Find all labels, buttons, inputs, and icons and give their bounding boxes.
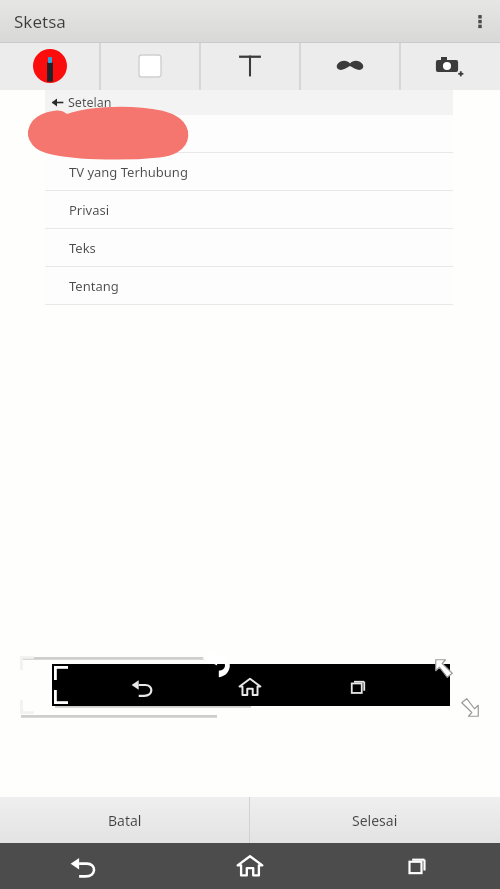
button[interactable]: Selesai — [250, 797, 500, 843]
staticText: Tentang — [69, 277, 119, 295]
button[interactable]: Tentang — [45, 267, 453, 305]
staticText: Sketsa — [14, 10, 66, 33]
button[interactable]: Batal — [0, 797, 249, 843]
staticText: Setelan — [68, 94, 112, 111]
staticText: TV yang Terhubung — [69, 163, 188, 181]
button[interactable]: Home — [166, 843, 333, 889]
staticText: Teks — [69, 239, 96, 257]
staticText: Batal — [108, 811, 142, 830]
button[interactable]: More options — [460, 0, 500, 42]
button[interactable]: Sticker — [300, 42, 400, 90]
button[interactable]: Shape — [100, 42, 200, 90]
button[interactable]: Umum — [45, 115, 453, 153]
button[interactable]: Recents — [333, 843, 500, 889]
button[interactable]: Setelan — [45, 90, 453, 115]
button[interactable]: Pen — [0, 42, 100, 90]
button[interactable]: Back — [0, 843, 166, 889]
staticText: Selesai — [352, 811, 398, 830]
button[interactable]: TV yang Terhubung — [45, 153, 453, 191]
button[interactable]: Add photo — [400, 42, 500, 90]
button[interactable]: Teks — [45, 229, 453, 267]
staticText: Privasi — [69, 201, 110, 219]
button[interactable]: Privasi — [45, 191, 453, 229]
button[interactable]: Text — [200, 42, 300, 90]
